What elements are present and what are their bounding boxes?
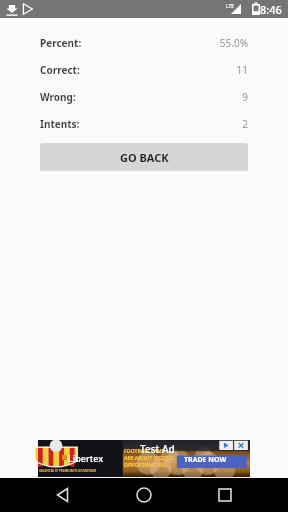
staticText: 9 (76, 90, 248, 104)
button[interactable]: Back (46, 478, 80, 512)
staticText: Wrong: (40, 90, 76, 104)
staticText: TRADE NOW (184, 455, 227, 465)
button[interactable]: Home (127, 478, 161, 512)
staticText: Correct: (40, 63, 80, 77)
staticText: LTE (226, 3, 235, 10)
staticText: Intents: (40, 117, 80, 131)
button[interactable]: Intents: (0, 110, 288, 137)
staticText: FOOTBALL FANS (124, 448, 164, 455)
button[interactable]: Correct: (0, 56, 288, 83)
button[interactable]: GO BACK (40, 143, 248, 171)
staticText: 11 (80, 63, 248, 77)
staticText: Percent: (40, 36, 82, 50)
staticText: OPPORTUNITIES! (124, 462, 166, 469)
staticText: 2 (80, 117, 248, 131)
staticText: VALENCIA CF PREMIUM PLUS PARTNER (39, 469, 97, 473)
staticText: Libertex (68, 452, 104, 464)
staticText: 8:46 (260, 2, 282, 17)
staticText: ARE ABOUT SEIZING (124, 455, 174, 462)
staticText: Test Ad (140, 442, 175, 456)
button[interactable]: Wrong: (0, 83, 288, 110)
button[interactable]: Recent apps (208, 478, 242, 512)
staticText: 55.0% (82, 36, 248, 50)
staticText: GO BACK (120, 150, 169, 165)
button[interactable]: Advertisement (38, 440, 250, 477)
button[interactable]: Percent: (0, 29, 288, 56)
